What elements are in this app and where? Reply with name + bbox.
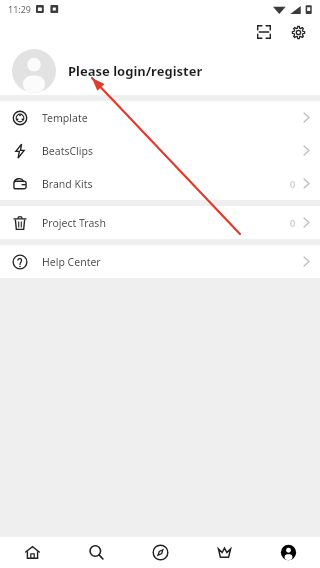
button[interactable]: Help Center — [0, 245, 320, 278]
button[interactable]: Search — [64, 537, 128, 568]
button[interactable]: Please login/register — [0, 46, 320, 95]
button[interactable]: Template — [0, 101, 320, 134]
staticText: Project Trash — [42, 216, 106, 230]
staticText: Brand Kits — [42, 177, 93, 191]
staticText: BeatsClips — [42, 144, 93, 158]
button[interactable]: Brand Kits — [0, 167, 320, 200]
button[interactable]: Premium — [192, 537, 256, 568]
staticText: 0 — [290, 178, 296, 190]
button[interactable]: Scan — [250, 18, 278, 46]
button[interactable]: Settings — [284, 18, 312, 46]
button[interactable]: Home — [0, 537, 64, 568]
staticText: 0 — [290, 217, 296, 229]
staticText: Template — [42, 111, 88, 125]
staticText: Help Center — [42, 255, 101, 269]
button[interactable]: Project Trash — [0, 206, 320, 239]
button[interactable]: Discover — [128, 537, 192, 568]
staticText: 11:29 — [8, 3, 32, 15]
button[interactable]: Profile — [256, 537, 320, 568]
button[interactable]: BeatsClips — [0, 134, 320, 167]
staticText: Please login/register — [68, 62, 203, 80]
